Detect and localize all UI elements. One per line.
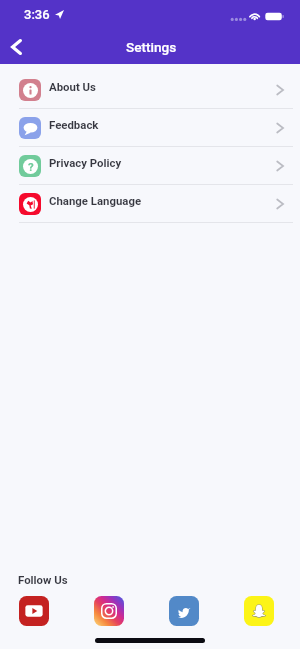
button[interactable]: Change Language	[0, 185, 300, 222]
staticText: Privacy Policy	[49, 156, 122, 169]
button[interactable]: Snapchat	[244, 596, 274, 626]
button[interactable]: Back	[2, 30, 34, 62]
staticText: Change Language	[49, 194, 142, 207]
staticText: 3:36	[24, 7, 50, 22]
staticText: Settings	[126, 39, 177, 55]
button[interactable]: Instagram	[94, 596, 124, 626]
button[interactable]: Twitter	[169, 596, 199, 626]
button[interactable]: ?	[0, 147, 300, 184]
staticText: Follow Us	[18, 573, 68, 586]
button[interactable]: About Us	[0, 71, 300, 108]
staticText: ?	[28, 160, 34, 173]
staticText: About Us	[49, 80, 96, 93]
staticText: Feedback	[49, 118, 99, 131]
button[interactable]: YouTube	[19, 596, 49, 626]
button[interactable]: Feedback	[0, 109, 300, 146]
